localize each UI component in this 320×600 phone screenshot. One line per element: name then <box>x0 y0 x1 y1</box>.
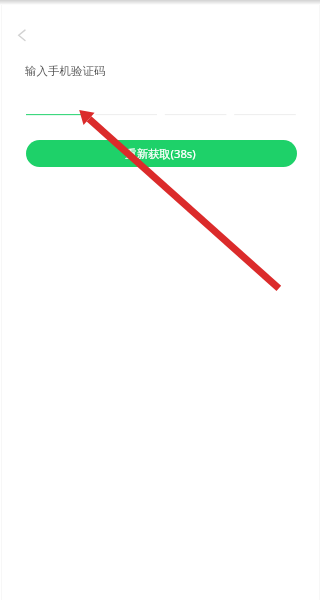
button[interactable]: Verification code input <box>26 103 297 125</box>
button[interactable]: 重新获取(38s) <box>26 140 297 167</box>
staticText: 重新获取(38s) <box>125 146 196 161</box>
staticText: 输入手机验证码 <box>25 64 106 78</box>
button[interactable]: Back <box>7 21 36 50</box>
